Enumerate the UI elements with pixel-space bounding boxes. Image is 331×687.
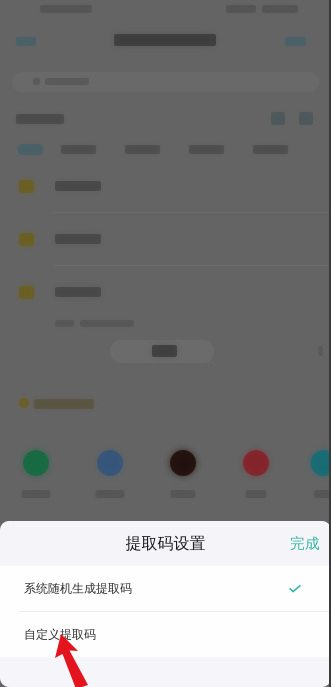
staticText: 系统随机生成提取码 — [24, 581, 132, 596]
staticText: 自定义提取码 — [24, 627, 96, 642]
staticText: 提取码设置 — [125, 534, 205, 553]
staticText: 完成 — [290, 534, 320, 552]
button[interactable]: 完成 — [279, 522, 331, 564]
button[interactable]: 系统随机生成提取码 — [0, 566, 331, 611]
button[interactable]: 自定义提取码 — [0, 612, 331, 657]
